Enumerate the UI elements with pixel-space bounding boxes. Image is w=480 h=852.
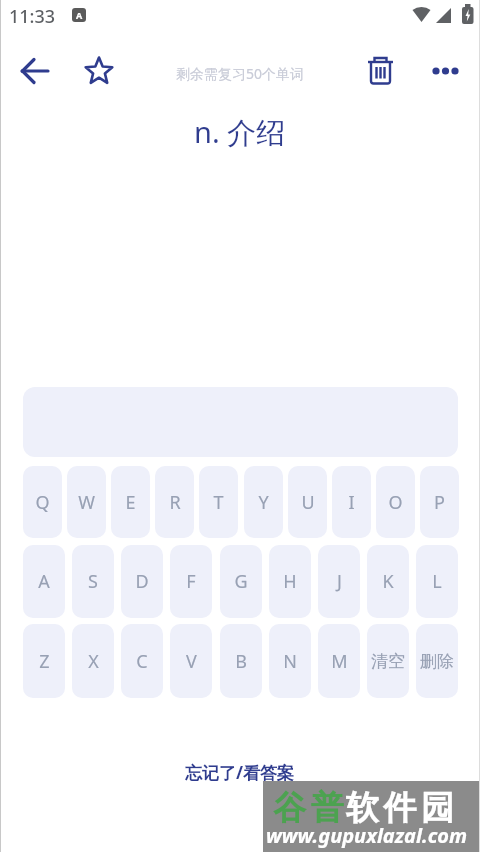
button[interactable]: 忘记了/看答案 xyxy=(185,761,295,784)
button[interactable] xyxy=(423,49,467,93)
staticText: 剩余需复习50个单词 xyxy=(176,64,305,83)
button[interactable]: U xyxy=(288,466,327,538)
staticText: I xyxy=(348,490,355,515)
staticText: Q xyxy=(35,490,50,515)
staticText: S xyxy=(88,569,98,594)
button[interactable]: 删除 xyxy=(416,624,458,698)
button[interactable]: E xyxy=(111,466,150,538)
button[interactable] xyxy=(359,49,403,93)
staticText: Z xyxy=(39,649,50,674)
button[interactable]: V xyxy=(170,624,212,698)
staticText: B xyxy=(235,649,247,674)
button[interactable]: I xyxy=(332,466,371,538)
staticText: X xyxy=(88,649,99,674)
staticText: 11:33 xyxy=(9,4,56,29)
staticText: 忘记了/看答案 xyxy=(185,761,295,784)
button[interactable]: X xyxy=(72,624,114,698)
staticText: K xyxy=(382,569,394,594)
staticText: J xyxy=(337,569,342,594)
button[interactable]: 清空 xyxy=(367,624,409,698)
staticText: T xyxy=(213,490,224,515)
button[interactable]: O xyxy=(376,466,415,538)
staticText: C xyxy=(136,649,148,674)
staticText: www.gupuxlazal.com xyxy=(266,822,468,849)
staticText: U xyxy=(301,490,315,515)
button[interactable]: W xyxy=(67,466,106,538)
staticText: 清空 xyxy=(371,651,405,672)
button[interactable]: M xyxy=(318,624,360,698)
staticText: M xyxy=(331,649,348,674)
staticText: V xyxy=(186,649,197,674)
button[interactable]: H xyxy=(269,545,311,618)
button[interactable]: N xyxy=(269,624,311,698)
staticText: A xyxy=(38,569,50,594)
button[interactable]: C xyxy=(121,624,163,698)
staticText: H xyxy=(283,569,297,594)
staticText: F xyxy=(186,569,196,594)
button[interactable]: K xyxy=(367,545,409,618)
staticText: W xyxy=(78,490,95,515)
staticText: O xyxy=(388,490,403,515)
staticText: A xyxy=(76,9,83,21)
button[interactable]: B xyxy=(220,624,262,698)
button[interactable]: S xyxy=(72,545,114,618)
button[interactable]: P xyxy=(420,466,459,538)
staticText: G xyxy=(234,569,248,594)
staticText: D xyxy=(135,569,149,594)
staticText: Y xyxy=(258,490,269,515)
button[interactable]: A xyxy=(23,545,65,618)
button[interactable]: G xyxy=(220,545,262,618)
staticText: E xyxy=(125,490,136,515)
button[interactable]: Y xyxy=(244,466,283,538)
staticText: 删除 xyxy=(420,651,454,672)
button[interactable]: Q xyxy=(23,466,62,538)
staticText: N xyxy=(283,649,297,674)
staticText: 谷普 xyxy=(271,787,346,829)
button[interactable]: J xyxy=(318,545,360,618)
staticText: 软件园 xyxy=(346,787,459,829)
button[interactable]: R xyxy=(155,466,194,538)
button[interactable] xyxy=(77,49,121,93)
staticText: n. 介绍 xyxy=(194,112,286,152)
button[interactable]: D xyxy=(121,545,163,618)
staticText: P xyxy=(434,490,445,515)
button[interactable]: T xyxy=(199,466,238,538)
button[interactable]: F xyxy=(170,545,212,618)
button[interactable]: Z xyxy=(23,624,65,698)
button[interactable]: L xyxy=(416,545,458,618)
staticText: L xyxy=(432,569,442,594)
button[interactable] xyxy=(13,49,57,93)
staticText: R xyxy=(169,490,181,515)
